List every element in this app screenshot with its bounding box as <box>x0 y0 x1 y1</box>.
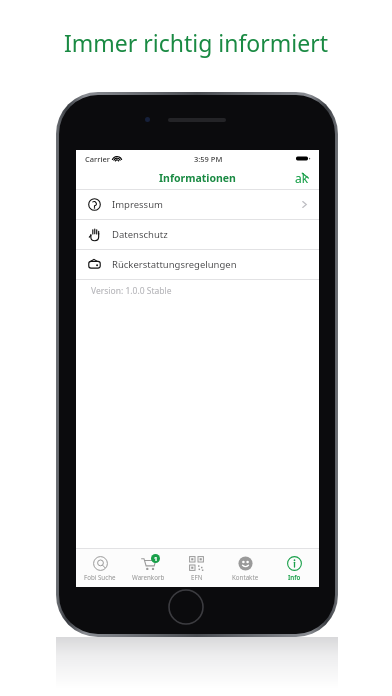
staticText: Impressum <box>112 198 163 211</box>
button[interactable]: Info <box>270 549 319 587</box>
staticText: Carrier <box>85 154 110 164</box>
button[interactable]: Rückerstattungsregelungen <box>76 250 319 279</box>
button[interactable]: EFN <box>172 549 221 587</box>
staticText: Fobi Suche <box>84 573 116 581</box>
button[interactable]: 1 <box>124 549 172 587</box>
button[interactable]: Fobi Suche <box>76 549 124 587</box>
staticText: Informationen <box>159 171 236 185</box>
staticText: Rückerstattungsregelungen <box>112 258 237 271</box>
button[interactable]: Kontakte <box>221 549 270 587</box>
staticText: Warenkorb <box>132 573 165 581</box>
staticText: 1 <box>154 555 158 563</box>
staticText: ak <box>295 170 309 186</box>
staticText: Kontakte <box>232 573 259 581</box>
staticText: 3:59 PM <box>194 154 223 164</box>
staticText: Datenschutz <box>112 228 168 241</box>
staticText: Info <box>288 573 301 581</box>
button[interactable]: Impressum <box>76 190 319 219</box>
button[interactable]: Logo <box>292 170 312 186</box>
staticText: EFN <box>191 573 203 581</box>
button[interactable]: Datenschutz <box>76 220 319 249</box>
staticText: Version: 1.0.0 Stable <box>91 285 172 297</box>
staticText: Immer richtig informiert <box>64 27 328 58</box>
